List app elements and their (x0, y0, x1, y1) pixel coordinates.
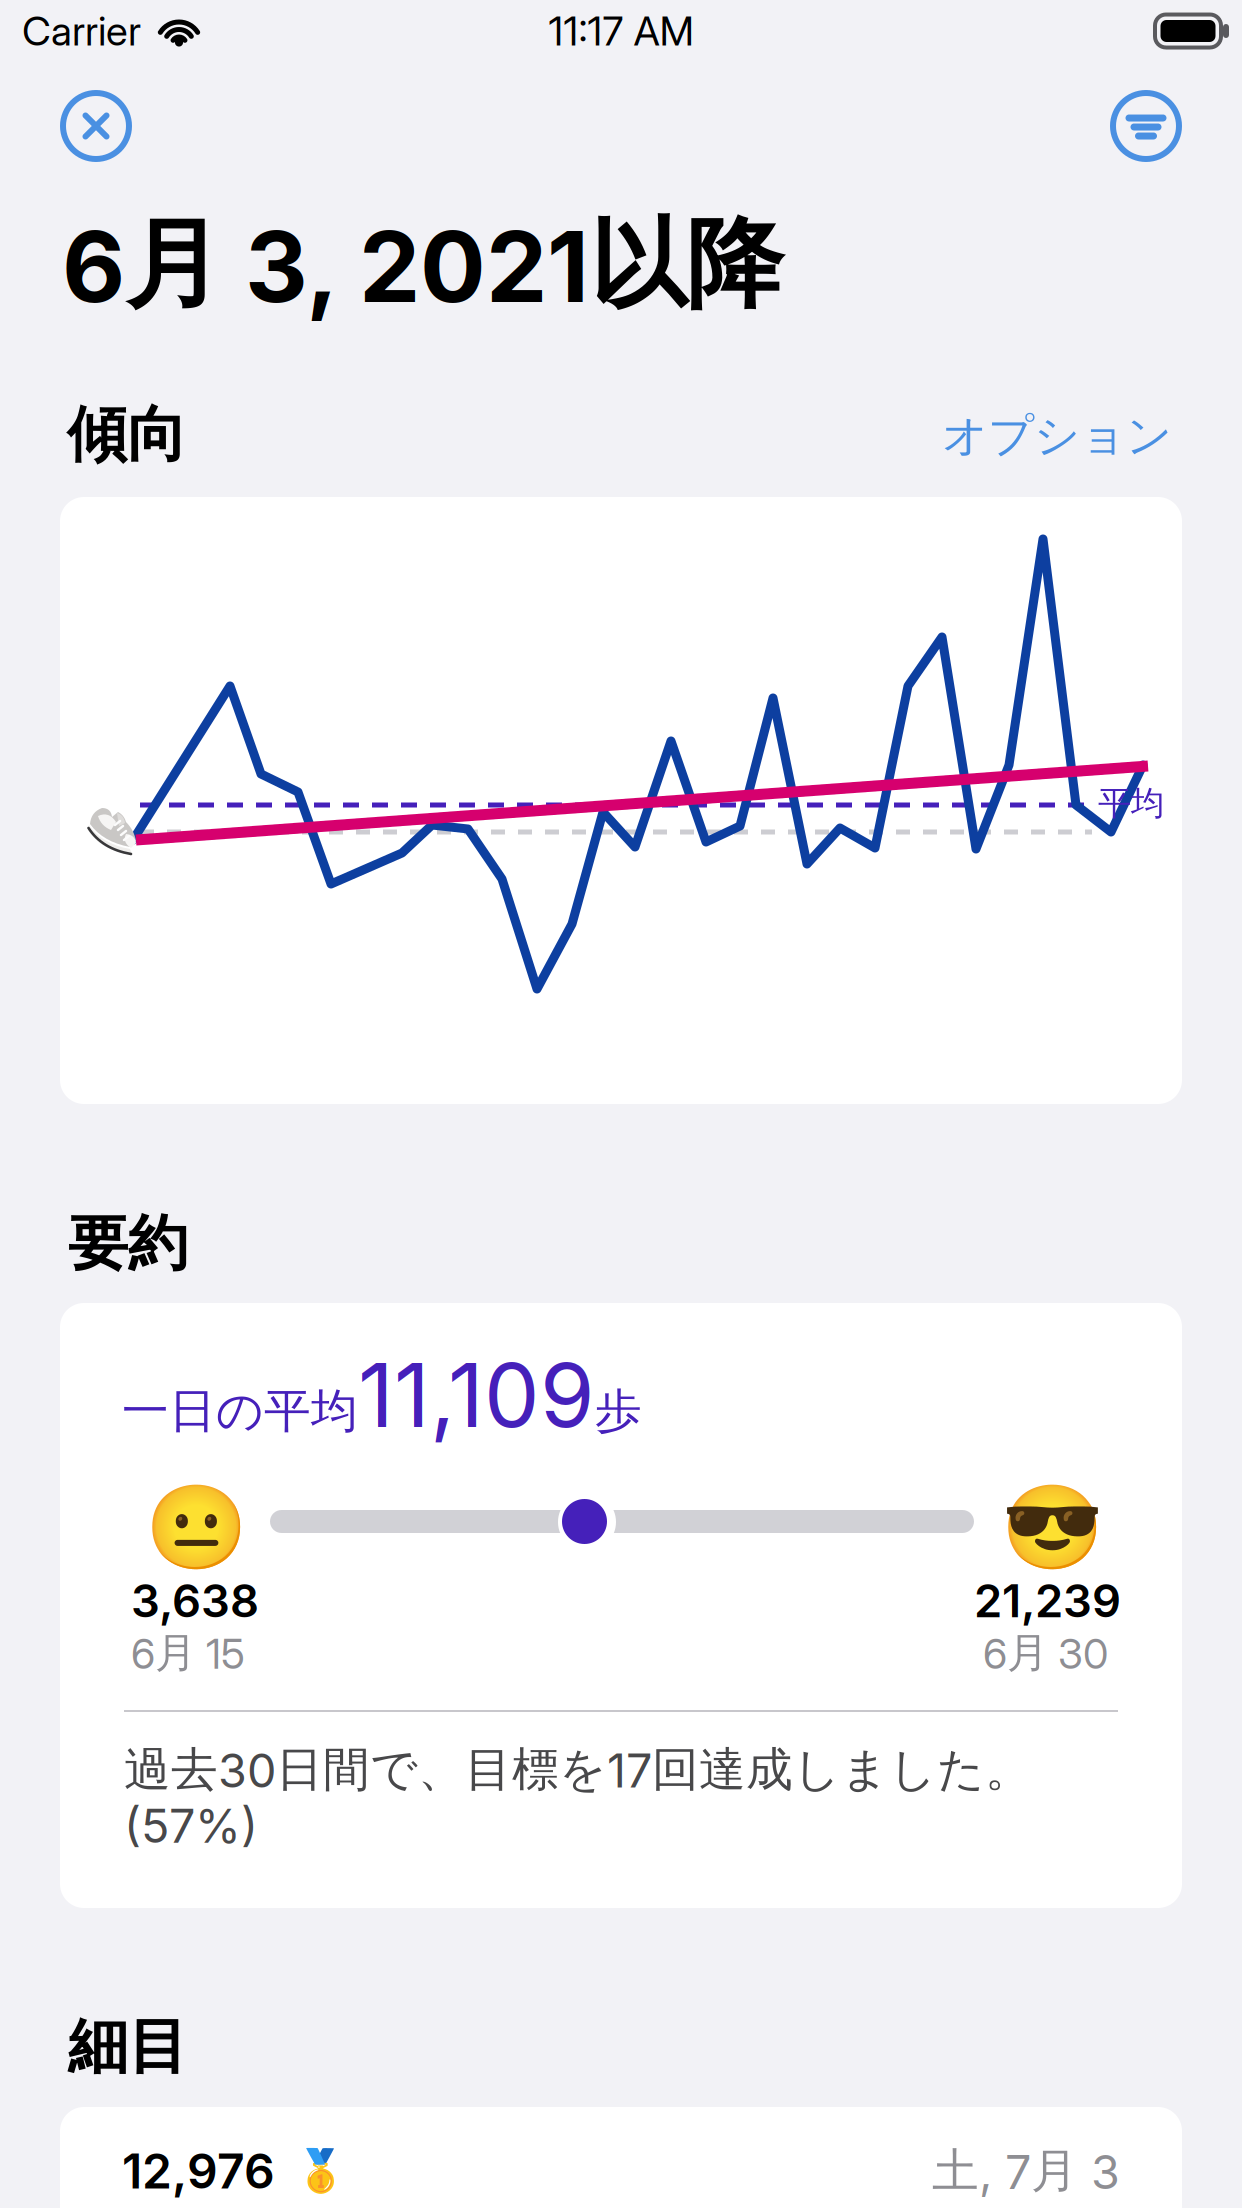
staticText: 12,976 (122, 2143, 275, 2199)
staticText: 過去30日間で、目標を17回達成しました。(57%) (124, 1741, 1032, 1853)
button[interactable]: 12,976 (122, 2119, 1120, 2208)
staticText: 11:17 AM (548, 7, 693, 55)
staticText: 3,638 (131, 1574, 259, 1627)
staticText: 6月 15 (131, 1627, 245, 1678)
staticText: 6月 3, 2021以降 (62, 205, 783, 325)
staticText: オプション (942, 408, 1172, 464)
staticText: 土, 7月 3 (932, 2142, 1120, 2200)
staticText: 😐 (145, 1481, 248, 1575)
staticText: 要約 (68, 1207, 188, 1281)
staticText: 細目 (68, 2010, 188, 2084)
staticText: 😎 (1001, 1481, 1104, 1575)
staticText: Carrier (22, 7, 141, 55)
staticText: 傾向 (67, 398, 187, 472)
staticText: 6月 30 (983, 1627, 1108, 1678)
staticText: 一日の平均 (122, 1382, 358, 1440)
staticText: 11,109 (358, 1343, 595, 1447)
staticText: 歩 (595, 1382, 642, 1440)
button[interactable]: Close (63, 93, 129, 159)
button[interactable]: Sort options (1113, 93, 1179, 159)
staticText: 平均 (1098, 783, 1164, 824)
button[interactable]: オプション (820, 406, 1172, 466)
staticText: 🥇 (295, 2147, 346, 2195)
staticText: 21,239 (974, 1574, 1121, 1627)
